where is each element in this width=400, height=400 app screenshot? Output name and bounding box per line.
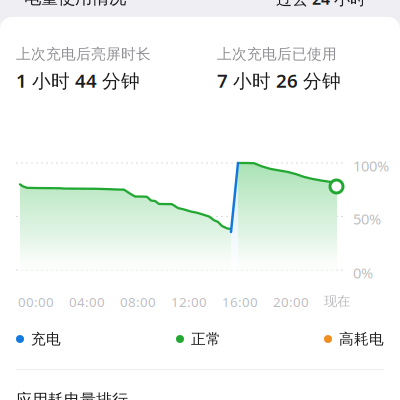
staticText: 50% [353, 209, 381, 228]
staticText: 00:00 [18, 293, 54, 311]
staticText: 现在 [324, 293, 350, 309]
staticText: 1 小时 44 分钟 [16, 68, 140, 93]
staticText: 电量使用情况 [24, 0, 126, 8]
staticText: 上次充电后亮屏时长 [16, 45, 151, 63]
button[interactable]: 过去 24 小时 [276, 0, 366, 9]
staticText: 100% [353, 156, 389, 175]
button[interactable]: 电量图表 [0, 152, 400, 312]
staticText: 04:00 [69, 293, 105, 311]
staticText: 08:00 [120, 293, 156, 311]
staticText: 7 小时 26 分钟 [217, 68, 341, 93]
staticText: 16:00 [222, 293, 258, 311]
staticText: 12:00 [171, 293, 207, 311]
staticText: 0% [353, 263, 373, 282]
staticText: 20:00 [273, 293, 309, 311]
staticText: 正常 [191, 330, 221, 348]
staticText: 上次充电后已使用 [217, 45, 337, 63]
staticText: 高耗电 [339, 330, 384, 348]
staticText: 充电 [31, 330, 61, 348]
staticText: 过去 24 小时 [276, 0, 366, 9]
staticText: 应用耗电量排行 [16, 390, 128, 400]
